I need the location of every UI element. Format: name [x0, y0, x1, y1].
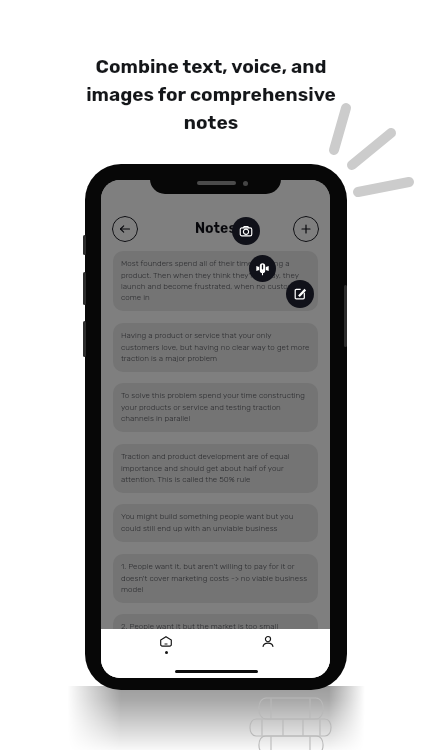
- button[interactable]: Having a product or service that your on…: [113, 323, 318, 372]
- button[interactable]: Back: [112, 216, 138, 242]
- button[interactable]: 1. People want it, but aren't willing to…: [113, 554, 318, 603]
- staticText: You might build something people want bu…: [121, 512, 310, 533]
- staticText: 1. People want it, but aren't willing to…: [121, 562, 310, 594]
- button[interactable]: Write note: [286, 280, 314, 308]
- staticText: Traction and product development are of …: [121, 452, 310, 484]
- button[interactable]: Home: [139, 629, 193, 678]
- button[interactable]: Profile: [241, 629, 295, 678]
- staticText: Most founders spend all of their time bu…: [121, 259, 310, 302]
- button[interactable]: Voice note: [249, 255, 276, 282]
- button[interactable]: To solve this problem spend your time co…: [113, 383, 318, 432]
- button[interactable]: 2. People want it but the market is too …: [113, 614, 318, 641]
- staticText: 2. People want it but the market is too …: [121, 622, 279, 631]
- button[interactable]: Traction and product development are of …: [113, 444, 318, 493]
- button[interactable]: Add note: [293, 216, 319, 242]
- button[interactable]: Most founders spend all of their time bu…: [113, 251, 318, 311]
- staticText: Notes: [195, 220, 237, 237]
- staticText: To solve this problem spend your time co…: [121, 391, 310, 423]
- button[interactable]: You might build something people want bu…: [113, 504, 318, 542]
- staticText: Having a product or service that your on…: [121, 331, 310, 363]
- button[interactable]: Camera: [232, 217, 260, 245]
- staticText: Combine text, voice, and images for comp…: [0, 55, 422, 133]
